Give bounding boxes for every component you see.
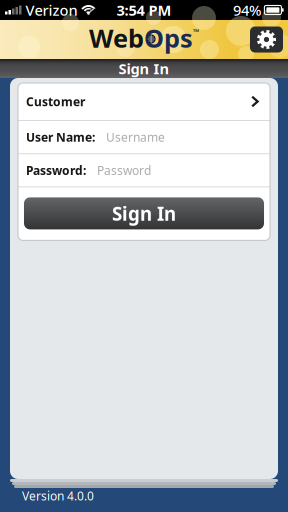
staticText: Web — [89, 21, 144, 55]
staticText: Customer — [26, 93, 85, 109]
staticText: Ops — [144, 21, 193, 55]
staticText: Password: — [26, 162, 86, 178]
button[interactable]: Sign In — [18, 187, 270, 240]
staticText: Verizon — [25, 0, 77, 20]
staticText: Version 4.0.0 — [22, 488, 94, 504]
staticText: Sign In — [118, 59, 169, 78]
button[interactable]: Settings — [250, 26, 283, 52]
staticText: Username — [106, 129, 165, 145]
staticText: Password — [97, 162, 151, 178]
staticText: ™ — [193, 27, 199, 37]
staticText: Sign In — [112, 201, 176, 226]
staticText: 94% — [233, 0, 261, 20]
staticText: User Name: — [26, 129, 95, 145]
button[interactable]: Customer — [18, 83, 270, 120]
staticText: 3:54 PM — [116, 0, 171, 20]
